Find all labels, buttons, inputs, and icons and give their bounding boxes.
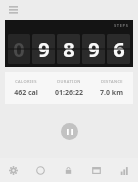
staticText: DURATION (57, 79, 81, 84)
staticText: 8 (63, 36, 75, 63)
staticText: 0 (13, 36, 25, 63)
button[interactable]: Activity (27, 158, 54, 182)
staticText: 6 (113, 36, 125, 63)
staticText: 462 cal (14, 88, 38, 98)
button[interactable]: Settings (0, 158, 27, 182)
button[interactable]: Stats (110, 158, 138, 182)
staticText: 01:26:22 (55, 88, 83, 98)
button[interactable]: DURATION (47, 79, 90, 98)
button[interactable]: Menu (6, 3, 20, 17)
button[interactable]: DISTANCE (90, 79, 133, 98)
staticText: 7.0 km (100, 88, 123, 98)
button[interactable]: CALORIES (5, 79, 47, 98)
staticText: CALORIES (15, 79, 37, 84)
button[interactable]: Lock (54, 158, 82, 182)
button[interactable]: Pause (61, 123, 78, 140)
staticText: STEPS (114, 23, 129, 28)
staticText: 9 (38, 36, 50, 63)
button[interactable]: Cards (82, 158, 110, 182)
staticText: 9 (88, 36, 100, 63)
staticText: DISTANCE (101, 79, 123, 84)
